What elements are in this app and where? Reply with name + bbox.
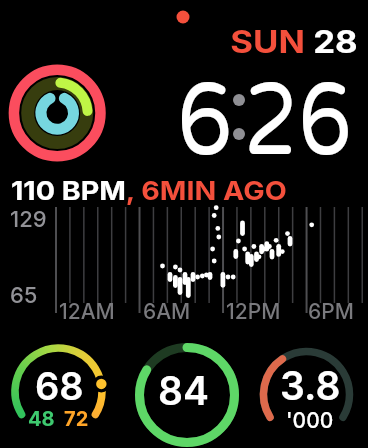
staticText: 84 bbox=[158, 367, 209, 414]
staticText: 6PM bbox=[308, 299, 354, 324]
button[interactable]: 6 bbox=[0, 61, 233, 183]
staticText: 12AM bbox=[59, 299, 115, 324]
staticText: 129 bbox=[10, 206, 47, 233]
staticText: 3.8 bbox=[280, 362, 341, 409]
button[interactable] bbox=[0, 164, 368, 324]
staticText: 6AM bbox=[143, 299, 191, 324]
staticText: 72 bbox=[64, 407, 89, 431]
staticText: 65 bbox=[10, 282, 38, 309]
button[interactable] bbox=[135, 343, 239, 447]
staticText: 68 bbox=[35, 363, 84, 409]
staticText: 110 BPM, 6MIN AGO bbox=[11, 175, 287, 206]
staticText: 12PM bbox=[226, 299, 281, 324]
staticText: '000 bbox=[286, 408, 334, 433]
staticText: 6 bbox=[177, 61, 233, 183]
staticText: 26 bbox=[244, 61, 352, 183]
button[interactable] bbox=[256, 344, 357, 445]
staticText: 48 bbox=[28, 407, 55, 431]
button[interactable]: SUN 28 bbox=[0, 23, 358, 61]
button[interactable] bbox=[8, 342, 108, 442]
staticText: SUN 28 bbox=[230, 23, 358, 61]
button[interactable] bbox=[8, 60, 105, 157]
